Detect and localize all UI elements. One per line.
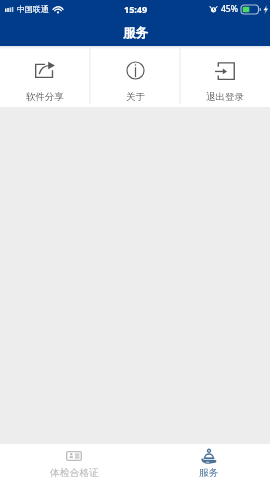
staticText: 软件分享 [26, 91, 64, 103]
staticText: 退出登录 [206, 91, 244, 103]
staticText: 15:49 [124, 3, 148, 15]
staticText: 45% [221, 3, 238, 15]
button[interactable]: 关于 [90, 46, 180, 107]
button[interactable]: 退出登录 [180, 46, 270, 107]
staticText: 关于 [126, 91, 145, 103]
staticText: 服务 [123, 25, 148, 41]
staticText: 中国联通 [17, 4, 49, 14]
button[interactable]: 服务 [159, 444, 259, 480]
button[interactable]: 软件分享 [0, 46, 90, 107]
staticText: 服务 [199, 467, 219, 479]
staticText: 体检合格证 [50, 467, 99, 479]
button[interactable]: 体检合格证 [24, 444, 124, 480]
